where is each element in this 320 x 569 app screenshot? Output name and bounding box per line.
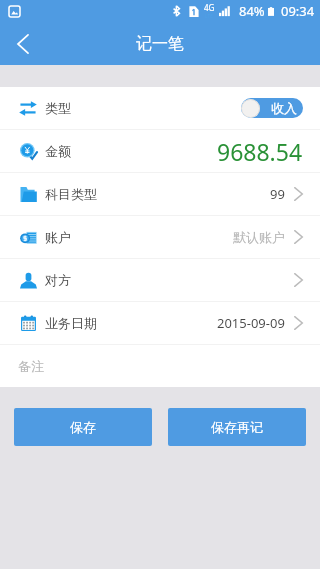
button[interactable]: 备注: [0, 345, 320, 387]
button[interactable]: 保存: [14, 408, 152, 446]
button[interactable]: Back: [0, 22, 43, 65]
button[interactable]: 保存再记: [168, 408, 306, 446]
button[interactable]: 业务日期: [0, 302, 320, 344]
staticText: 业务日期: [45, 315, 97, 331]
button[interactable]: 账户: [0, 216, 320, 258]
button[interactable]: 收入: [241, 98, 303, 118]
staticText: 类型: [45, 100, 71, 116]
staticText: 2015-09-09: [217, 314, 285, 332]
staticText: 99: [270, 185, 285, 203]
staticText: 记一笔: [136, 34, 184, 54]
button[interactable]: 类型: [0, 87, 320, 129]
staticText: 收入: [271, 100, 297, 116]
staticText: 对方: [45, 272, 71, 288]
staticText: 默认账户: [233, 229, 285, 245]
button[interactable]: 对方: [0, 259, 320, 301]
button[interactable]: 科目类型: [0, 173, 320, 215]
staticText: 保存再记: [211, 419, 263, 435]
staticText: 4G: [204, 2, 215, 13]
staticText: 账户: [45, 229, 71, 245]
staticText: 9688.54: [217, 136, 303, 167]
button[interactable]: 金额: [0, 130, 320, 172]
staticText: 金额: [45, 143, 71, 159]
staticText: 备注: [18, 358, 44, 374]
staticText: 保存: [70, 419, 96, 435]
staticText: 84%: [239, 2, 265, 20]
staticText: 09:34: [281, 2, 315, 20]
staticText: 科目类型: [45, 186, 97, 202]
